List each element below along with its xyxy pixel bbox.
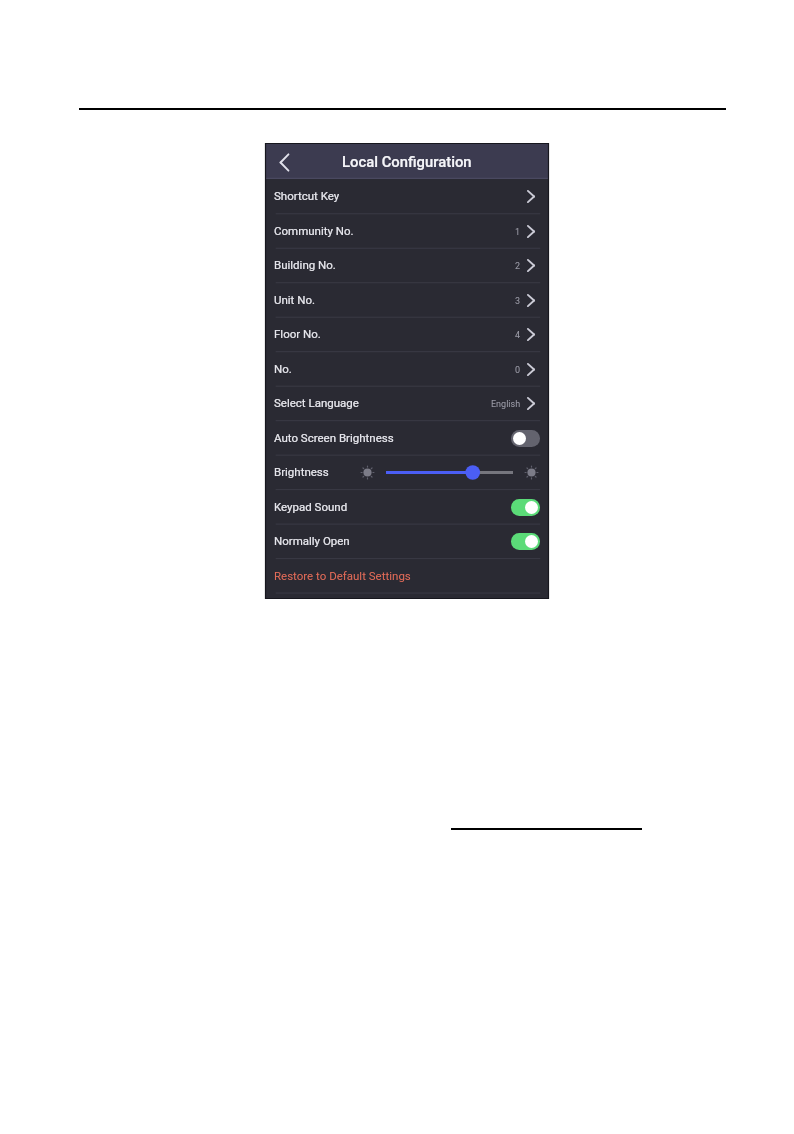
button[interactable]: Back (272, 149, 297, 174)
button[interactable]: Switch off (511, 430, 540, 447)
staticText: Shortcut Key (274, 189, 340, 202)
button[interactable]: Shortcut Key (265, 179, 549, 213)
staticText: Local Configuration (342, 153, 472, 170)
staticText: Normally Open (274, 534, 350, 547)
staticText: Unit No. (274, 293, 316, 306)
button[interactable]: Brightness slider (386, 465, 513, 480)
staticText: Floor No. (274, 327, 321, 340)
staticText: Community No. (274, 224, 354, 237)
staticText: 3 (515, 296, 521, 307)
staticText: Select Language (274, 396, 359, 409)
staticText: 1 (515, 227, 521, 238)
button[interactable]: Building No. (265, 248, 549, 282)
button[interactable]: Unit No. (265, 283, 549, 317)
button[interactable]: Floor No. (265, 317, 549, 351)
button[interactable]: Restore to Default Settings (265, 559, 549, 593)
staticText: No. (274, 362, 292, 375)
button[interactable]: Normally Open (265, 524, 549, 558)
staticText: Brightness (274, 465, 329, 478)
button[interactable]: Select Language (265, 386, 549, 420)
staticText: 4 (515, 330, 521, 341)
staticText: Auto Screen Brightness (274, 431, 394, 444)
staticText: Restore to Default Settings (274, 569, 411, 582)
staticText: 0 (515, 365, 521, 376)
staticText: Keypad Sound (274, 500, 348, 513)
staticText: 2 (515, 261, 521, 272)
staticText: English (491, 399, 521, 410)
button[interactable]: Switch on (511, 499, 540, 516)
button[interactable]: Keypad Sound (265, 490, 549, 524)
button[interactable]: Auto Screen Brightness (265, 421, 549, 455)
staticText: Building No. (274, 258, 336, 271)
button[interactable]: Switch on (511, 533, 540, 550)
button[interactable]: No. (265, 352, 549, 386)
button[interactable]: Community No. (265, 214, 549, 248)
